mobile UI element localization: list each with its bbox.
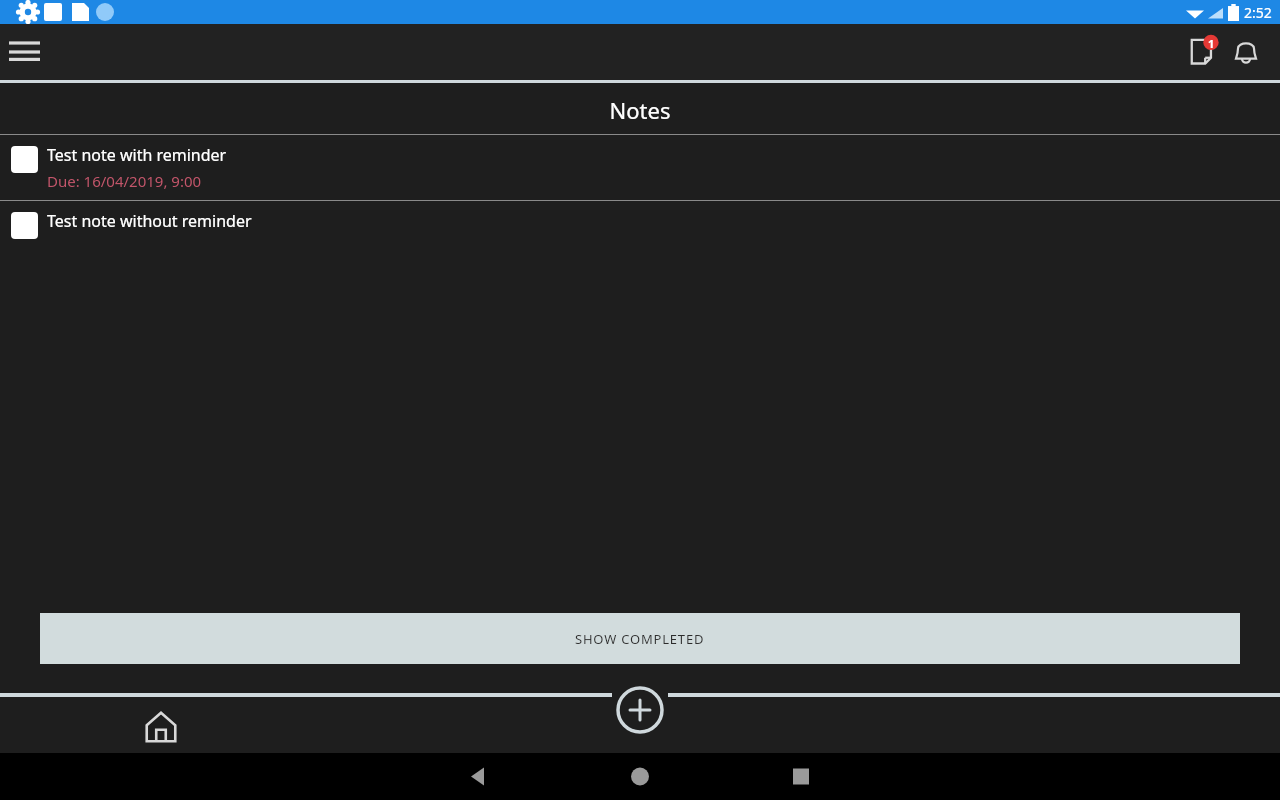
staticText: Test note with reminder — [47, 144, 227, 166]
button[interactable]: Toggle complete — [11, 146, 38, 173]
staticText: SHOW COMPLETED — [575, 630, 705, 648]
button[interactable]: Reminders — [1224, 30, 1268, 74]
staticText: Test note without reminder — [47, 210, 252, 232]
staticText: 1 — [1208, 36, 1215, 51]
button[interactable]: Add note — [617, 688, 663, 734]
button[interactable]: Home — [138, 704, 184, 750]
button[interactable]: Toggle complete — [11, 212, 38, 239]
button[interactable]: SHOW COMPLETED — [40, 613, 1240, 664]
button[interactable]: Toggle complete — [0, 135, 1280, 200]
staticText: 2:52 — [1244, 3, 1272, 22]
staticText: Notes — [0, 95, 1280, 125]
button[interactable]: Toggle complete — [0, 201, 1280, 248]
staticText: Due: 16/04/2019, 9:00 — [47, 171, 202, 191]
button[interactable]: Notes — [1180, 30, 1224, 74]
button[interactable]: Menu — [2, 30, 46, 74]
